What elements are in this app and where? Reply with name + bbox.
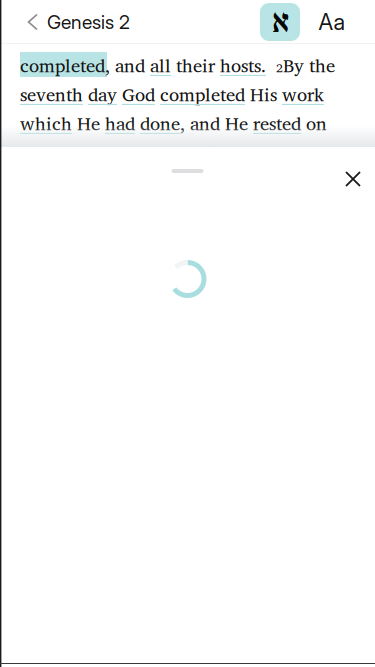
button[interactable]: Back xyxy=(0,0,47,44)
staticText: which He had done, and He rested on xyxy=(20,108,327,138)
staticText: seventh day God completed His work xyxy=(20,79,324,109)
button[interactable]: Close xyxy=(331,157,375,201)
staticText: Genesis 2 xyxy=(47,10,130,34)
button[interactable]: Hebrew interlinear xyxy=(260,3,300,41)
staticText: א xyxy=(271,1,288,43)
staticText: the seventh day from all His work which xyxy=(20,137,354,167)
button[interactable]: Genesis 2 xyxy=(47,0,139,44)
staticText: completed, and all their hosts. 2By the xyxy=(20,50,335,80)
staticText: Aa xyxy=(318,8,345,35)
button[interactable]: Text options xyxy=(310,0,354,44)
